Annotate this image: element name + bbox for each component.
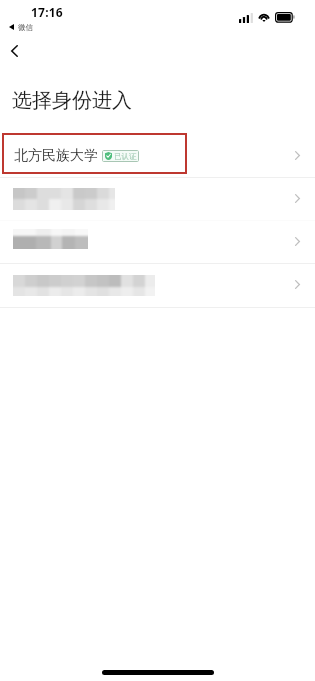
staticText: 微信 <box>18 23 33 32</box>
staticText: 选择身份进入 <box>12 88 132 113</box>
button[interactable]: Back <box>0 37 30 65</box>
staticText: 北方民族大学 <box>14 147 98 165</box>
staticText: 已认证 <box>114 152 137 161</box>
button[interactable]: 北方民族大学 <box>0 132 315 178</box>
staticText: 17:16 <box>31 4 63 20</box>
button[interactable] <box>0 177 315 220</box>
button[interactable] <box>0 220 315 263</box>
button[interactable] <box>0 263 315 306</box>
